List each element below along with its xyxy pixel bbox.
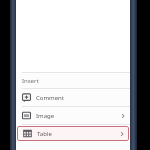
button[interactable]: Table [17, 126, 129, 141]
staticText: Comment [36, 94, 64, 102]
button[interactable]: Image [16, 107, 130, 124]
other: Open submenu [118, 130, 126, 138]
staticText: Insert [22, 77, 39, 85]
button[interactable]: Comment [16, 89, 130, 106]
other: Open submenu [119, 112, 127, 120]
staticText: Image [36, 112, 55, 120]
staticText: Table [37, 130, 52, 138]
